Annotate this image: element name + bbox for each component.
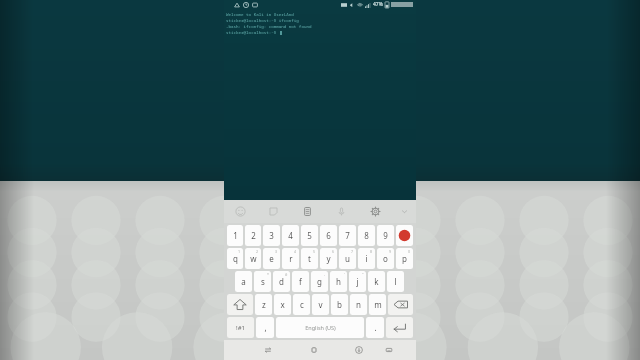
button[interactable]: v [312, 294, 329, 315]
staticText: # [285, 272, 288, 277]
button[interactable]: r [282, 248, 299, 269]
button[interactable]: o [377, 248, 394, 269]
staticText: l [394, 276, 397, 287]
button[interactable]: 4 [282, 225, 299, 246]
button[interactable]: Keyboard layout [376, 340, 401, 360]
button[interactable]: Clipboard [290, 200, 324, 223]
staticText: i [365, 253, 368, 264]
button[interactable]: Hide keyboard [346, 340, 371, 360]
button[interactable]: 7 [339, 225, 356, 246]
button[interactable]: y [320, 248, 337, 269]
button[interactable]: 9 [377, 225, 394, 246]
button[interactable]: Stickers [257, 200, 290, 223]
button[interactable]: t [301, 248, 318, 269]
button[interactable]: b [331, 294, 348, 315]
staticText: k [374, 276, 379, 287]
button[interactable]: e [263, 248, 280, 269]
staticText: sticker@localhost:~$ [226, 30, 279, 36]
button[interactable]: q [227, 248, 243, 269]
staticText: v [318, 299, 323, 310]
button[interactable]: Backspace [388, 294, 413, 315]
staticText: 6 [332, 249, 335, 254]
button[interactable]: f [292, 271, 309, 292]
button[interactable]: a [235, 271, 252, 292]
button[interactable]: Settings [358, 200, 392, 223]
button[interactable]: Shift [227, 294, 253, 315]
button[interactable]: Emoji [224, 200, 257, 223]
button[interactable]: i [358, 248, 375, 269]
button[interactable]: , [256, 317, 274, 338]
staticText: 3 [275, 249, 278, 254]
staticText: English (US) [305, 324, 336, 331]
button[interactable]: u [339, 248, 356, 269]
button[interactable]: z [255, 294, 272, 315]
staticText: h [336, 276, 341, 287]
button[interactable]: p [396, 248, 413, 269]
staticText: 5 [313, 249, 316, 254]
staticText: 5 [307, 230, 312, 241]
button[interactable]: j [349, 271, 366, 292]
staticText: z [262, 299, 266, 310]
staticText: c [300, 299, 304, 310]
staticText: r [289, 253, 293, 264]
button[interactable]: c [293, 294, 310, 315]
staticText: 8 [370, 249, 373, 254]
staticText: ' [344, 272, 345, 277]
staticText: 4 [288, 230, 293, 241]
staticText: w [250, 253, 257, 264]
button[interactable]: !#1 [227, 317, 254, 338]
button[interactable]: 2 [245, 225, 261, 246]
button[interactable]: Recents [301, 340, 326, 360]
staticText: n [356, 299, 361, 310]
button[interactable] [396, 225, 413, 246]
staticText: . [374, 322, 377, 333]
staticText: g [317, 276, 322, 287]
button[interactable]: w [245, 248, 261, 269]
staticText: -bash: ifconfig: command not found [226, 24, 312, 30]
button[interactable]: k [368, 271, 385, 292]
staticText: q [233, 253, 238, 264]
button[interactable]: x [274, 294, 291, 315]
staticText: " [362, 272, 364, 277]
staticText: x [280, 299, 285, 310]
staticText: 1 [238, 249, 241, 254]
button[interactable]: . [366, 317, 384, 338]
staticText: u [345, 253, 350, 264]
button[interactable]: h [330, 271, 347, 292]
staticText: s [261, 276, 265, 287]
staticText: a [241, 276, 246, 287]
staticText: * [267, 272, 269, 277]
button[interactable]: 5 [301, 225, 318, 246]
staticText: 9 [383, 230, 388, 241]
staticText: - [324, 272, 326, 277]
staticText: 0 [408, 249, 411, 254]
staticText: 47% [373, 1, 383, 8]
staticText: 8 [364, 230, 369, 241]
staticText: , [264, 322, 267, 333]
button[interactable]: d [273, 271, 290, 292]
staticText: 7 [345, 230, 350, 241]
button[interactable]: m [369, 294, 386, 315]
button[interactable]: 3 [263, 225, 280, 246]
staticText: 7 [351, 249, 354, 254]
staticText: 6 [326, 230, 331, 241]
button[interactable]: 1 [227, 225, 243, 246]
staticText: 9 [389, 249, 392, 254]
button[interactable]: s [254, 271, 271, 292]
button[interactable]: 6 [320, 225, 337, 246]
staticText: 2 [251, 230, 256, 241]
button[interactable]: 8 [358, 225, 375, 246]
staticText: y [326, 253, 331, 264]
button[interactable]: Enter [386, 317, 413, 338]
button[interactable]: English (US) [276, 317, 364, 338]
staticText: 2 [256, 249, 259, 254]
button[interactable]: l [387, 271, 404, 292]
button[interactable]: Voice input [324, 200, 358, 223]
button[interactable]: g [311, 271, 328, 292]
staticText: Welcome to Kali in UserLAnd [226, 12, 294, 18]
staticText: 1 [233, 230, 238, 241]
staticText: p [402, 253, 407, 264]
button[interactable]: n [350, 294, 367, 315]
button[interactable]: Switch keyboard [255, 340, 281, 360]
